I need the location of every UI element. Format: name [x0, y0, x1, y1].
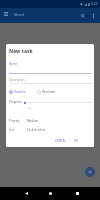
- button[interactable]: More options: [88, 10, 99, 21]
- staticText: Deadline: [14, 90, 27, 94]
- staticText: Description: [9, 78, 25, 82]
- button[interactable]: OK: [72, 137, 81, 145]
- staticText: OK: [74, 139, 79, 143]
- button[interactable]: Add task: [85, 167, 95, 177]
- button[interactable]: CANCEL: [53, 137, 68, 145]
- staticText: Name: [9, 62, 18, 66]
- staticText: Noted: [14, 12, 24, 16]
- staticText: Reminder: [42, 90, 56, 94]
- button[interactable]: Reminder: [37, 89, 56, 95]
- staticText: Medium: [27, 119, 39, 123]
- button[interactable]: Recent apps: [71, 187, 84, 200]
- button[interactable]: Search: [77, 10, 88, 21]
- button[interactable]: Deadline: [9, 89, 27, 95]
- staticText: List:: [9, 128, 15, 132]
- staticText: New task: [9, 48, 33, 55]
- button[interactable]: Home: [44, 187, 57, 200]
- staticText: Progress:: [9, 100, 22, 104]
- staticText: CANCEL: [55, 139, 66, 143]
- staticText: Click to select: [27, 128, 46, 132]
- staticText: 0%: [28, 107, 32, 110]
- staticText: Priority:: [9, 119, 20, 123]
- staticText: 5:52: [91, 2, 98, 6]
- button[interactable]: Back: [20, 187, 33, 200]
- button[interactable]: Open navigation drawer: [1, 9, 11, 19]
